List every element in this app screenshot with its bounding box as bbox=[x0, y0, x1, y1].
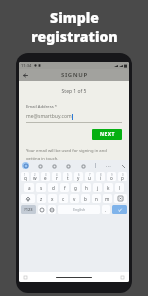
button[interactable]: Enter bbox=[112, 205, 127, 214]
staticText: 6 bbox=[78, 173, 80, 177]
staticText: l bbox=[119, 185, 121, 191]
staticText: c bbox=[62, 196, 65, 202]
button[interactable]: d bbox=[48, 183, 58, 192]
button[interactable]: Space bbox=[58, 205, 100, 214]
button[interactable]: Back bbox=[20, 70, 30, 80]
staticText: n bbox=[95, 196, 98, 202]
button[interactable]: 5 bbox=[63, 172, 72, 181]
staticText: p bbox=[121, 175, 124, 181]
staticText: 0 bbox=[122, 173, 124, 177]
staticText: 11:34 bbox=[21, 63, 32, 68]
button[interactable]: Keyboard tool bbox=[37, 163, 43, 169]
staticText: NEXT bbox=[100, 131, 115, 138]
button[interactable]: Home bbox=[56, 277, 92, 278]
button[interactable]: Keyboard tool bbox=[51, 163, 57, 169]
staticText: b bbox=[84, 196, 87, 202]
button[interactable]: m bbox=[103, 194, 112, 203]
staticText: z bbox=[40, 196, 43, 202]
button[interactable]: 7 bbox=[85, 172, 94, 181]
staticText: ?123 bbox=[24, 207, 33, 212]
staticText: f bbox=[64, 185, 66, 191]
staticText: 5 bbox=[67, 173, 69, 177]
staticText: English bbox=[73, 207, 86, 212]
staticText: u bbox=[88, 175, 91, 181]
staticText: Step 1 of 5 bbox=[19, 88, 129, 95]
staticText: g bbox=[74, 185, 77, 191]
staticText: 9 bbox=[111, 173, 113, 177]
staticText: e bbox=[44, 175, 47, 181]
button[interactable]: g bbox=[71, 183, 80, 192]
button[interactable]: Recents bbox=[120, 275, 125, 280]
button[interactable]: l bbox=[115, 183, 124, 192]
staticText: x bbox=[51, 196, 54, 202]
button[interactable]: 4 bbox=[52, 172, 61, 181]
staticText: q bbox=[24, 175, 27, 181]
staticText: t bbox=[67, 175, 69, 181]
staticText: m bbox=[105, 196, 110, 202]
button[interactable]: b bbox=[81, 194, 90, 203]
staticText: me@smartbuy.com bbox=[26, 113, 72, 120]
staticText: Your email will be used for signing in a… bbox=[26, 148, 107, 154]
staticText: k bbox=[107, 185, 110, 191]
button[interactable]: 0 bbox=[118, 172, 127, 181]
button[interactable]: k bbox=[104, 183, 113, 192]
staticText: j bbox=[97, 185, 99, 191]
staticText: 8 bbox=[100, 173, 102, 177]
button[interactable]: Shift bbox=[21, 194, 35, 203]
staticText: o bbox=[110, 175, 113, 181]
button[interactable]: Back bbox=[23, 275, 28, 280]
staticText: v bbox=[73, 196, 76, 202]
button[interactable]: . bbox=[102, 205, 110, 214]
staticText: 4 bbox=[56, 173, 58, 177]
staticText: i bbox=[100, 175, 102, 181]
button[interactable]: Gboard bbox=[22, 162, 29, 169]
staticText: 3 bbox=[45, 173, 47, 177]
staticText: w bbox=[33, 175, 37, 181]
staticText: 2 bbox=[34, 173, 36, 177]
button[interactable]: 6 bbox=[74, 172, 83, 181]
staticText: getting in touch. bbox=[26, 156, 59, 160]
staticText: h bbox=[85, 185, 88, 191]
staticText: Email Address * bbox=[26, 104, 58, 110]
button[interactable]: 2 bbox=[31, 172, 39, 181]
button[interactable]: f bbox=[60, 183, 69, 192]
button[interactable]: Keyboard tool bbox=[65, 163, 71, 169]
button[interactable]: ?123 bbox=[21, 205, 36, 214]
button[interactable]: a bbox=[24, 183, 34, 192]
button[interactable]: x bbox=[48, 194, 57, 203]
button[interactable]: Backspace bbox=[114, 194, 127, 203]
button[interactable]: Change language bbox=[48, 205, 56, 214]
button[interactable]: c bbox=[59, 194, 68, 203]
button[interactable]: Emoji bbox=[38, 205, 46, 214]
staticText: r bbox=[56, 175, 58, 181]
staticText: s bbox=[40, 185, 43, 191]
button[interactable]: 9 bbox=[107, 172, 116, 181]
button[interactable]: v bbox=[70, 194, 79, 203]
button[interactable]: z bbox=[37, 194, 46, 203]
button[interactable]: Hide keyboard bbox=[120, 163, 126, 169]
staticText: a bbox=[28, 185, 31, 191]
button[interactable]: 1 bbox=[21, 172, 29, 181]
staticText: d bbox=[52, 185, 55, 191]
button[interactable]: s bbox=[36, 183, 46, 192]
staticText: Simple bbox=[50, 8, 99, 27]
button[interactable]: n bbox=[92, 194, 101, 203]
staticText: registration bbox=[31, 27, 118, 46]
staticText: y bbox=[77, 175, 80, 181]
button[interactable]: NEXT bbox=[92, 129, 122, 140]
button[interactable]: More options bbox=[105, 163, 111, 169]
button[interactable]: Keyboard tool bbox=[80, 163, 86, 169]
staticText: 7 bbox=[89, 173, 91, 177]
staticText: 1 bbox=[24, 173, 26, 177]
staticText: . bbox=[105, 207, 107, 213]
button[interactable]: h bbox=[82, 183, 91, 192]
staticText: SIGNUP bbox=[61, 71, 88, 79]
button[interactable]: j bbox=[93, 183, 102, 192]
staticText: ⋯ bbox=[106, 163, 111, 169]
button[interactable]: 3 bbox=[41, 172, 50, 181]
button[interactable]: 8 bbox=[96, 172, 105, 181]
